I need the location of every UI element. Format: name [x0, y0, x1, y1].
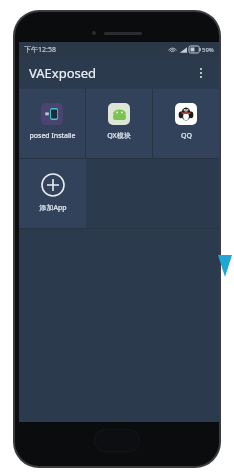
button[interactable]: QX模块 [86, 89, 152, 158]
staticText: QQ [181, 131, 192, 141]
staticText: QX模块 [107, 131, 131, 141]
button[interactable]: QQ [153, 89, 219, 158]
staticText: 添加App [39, 203, 67, 213]
staticText: 下午12:58 [24, 45, 56, 55]
staticText: posed Installe [29, 131, 76, 141]
button[interactable]: More options [189, 61, 213, 85]
button[interactable]: posed Installe [19, 89, 85, 158]
staticText: 59% [202, 46, 214, 54]
button[interactable]: 添加App [19, 159, 86, 228]
staticText: VAExposed [29, 64, 97, 82]
